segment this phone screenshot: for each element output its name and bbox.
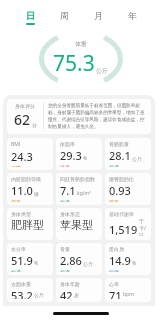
staticText: 基础代谢率 [109, 211, 134, 217]
button[interactable]: 基础代谢率 [105, 208, 151, 240]
staticText: 日 [26, 10, 35, 21]
button[interactable]: 周 [52, 9, 76, 26]
staticText: bpm [123, 291, 134, 298]
staticText: 年 [128, 10, 137, 21]
button[interactable]: 身体类型 [7, 208, 53, 240]
staticText: 分 [32, 122, 37, 128]
staticText: % [132, 260, 137, 267]
staticText: 标准 [109, 164, 119, 167]
staticText: 偏高 [109, 199, 119, 202]
staticText: 42 [60, 288, 73, 299]
button[interactable]: 身体评分 [7, 99, 151, 134]
staticText: 身体形态 [60, 211, 80, 217]
staticText: 29.3 [60, 148, 82, 163]
staticText: 骨骼肌量 [109, 141, 129, 147]
staticText: 28.1 [109, 148, 131, 163]
staticText: 偏低 [109, 269, 119, 272]
staticText: 千卡/日 [139, 218, 147, 236]
staticText: 内脏脂肪等级 [11, 176, 41, 182]
staticText: 周 [60, 10, 69, 21]
button[interactable]: 体脂率 [56, 138, 102, 170]
button[interactable]: 日 [18, 9, 42, 26]
staticText: 蛋白质 [109, 246, 124, 252]
staticText: 骨量 [60, 246, 70, 252]
staticText: 公斤 [34, 292, 44, 298]
staticText: 62 [14, 110, 31, 129]
staticText: 岁 [74, 292, 79, 298]
button[interactable]: 蛋白质 [105, 243, 151, 275]
staticText: 苹果型 [60, 218, 93, 232]
staticText: 7.1 [60, 183, 76, 198]
button[interactable]: 内脏脂肪等级 [7, 173, 53, 205]
staticText: 75.3 [53, 49, 95, 78]
button[interactable]: 去脂体重 [7, 278, 53, 302]
staticText: 偏高 [11, 199, 21, 202]
staticText: 2.86 [60, 253, 82, 268]
staticText: 体脂率 [60, 141, 75, 147]
staticText: 心率 [109, 281, 119, 287]
staticText: 四肢骨骼肌指数 [60, 176, 95, 182]
staticText: 月 [94, 10, 103, 21]
staticText: 水分率 [11, 246, 26, 252]
staticText: 公斤 [83, 261, 93, 267]
staticText: 标准 [60, 269, 70, 272]
staticText: 身体评分 [15, 103, 35, 109]
button[interactable]: 月 [86, 9, 110, 26]
staticText: 腰臀脂肪比 [109, 176, 134, 182]
staticText: 身体类型 [11, 211, 31, 217]
button[interactable]: 四肢骨骼肌指数 [56, 173, 102, 205]
staticText: 身体年龄 [60, 281, 80, 287]
staticText: 超重 [11, 165, 21, 167]
button[interactable]: 身体年龄 [56, 278, 102, 302]
staticText: 公斤 [96, 67, 108, 75]
button[interactable]: 骨量 [56, 243, 102, 275]
staticText: 0.93 [109, 183, 131, 198]
staticText: 公斤 [132, 156, 142, 162]
staticText: 体重 [75, 40, 87, 48]
staticText: 去脂体重 [11, 281, 31, 287]
staticText: 51.9 [11, 253, 33, 268]
staticText: 11.0 [11, 183, 33, 198]
staticText: 24.3 [11, 149, 33, 164]
staticText: % [83, 155, 88, 162]
staticText: 肥胖型 [11, 218, 44, 232]
staticText: 1,519 [109, 222, 138, 237]
button[interactable]: 水分率 [7, 243, 53, 275]
staticText: 71 [109, 288, 122, 299]
staticText: 您的全身骨骼肌量低于标准范围，但脂肪率超标，身材属于脂肪偏高较多的苹果型，增加了… [48, 103, 147, 130]
staticText: 标准 [11, 269, 21, 272]
button[interactable]: 身体形态 [56, 208, 102, 240]
staticText: BMI [11, 141, 21, 148]
staticText: 14.9 [109, 253, 131, 268]
staticText: 过高 [60, 164, 70, 167]
staticText: kg/m² [77, 190, 92, 197]
button[interactable]: 腰臀脂肪比 [105, 173, 151, 205]
button[interactable]: BMI [7, 138, 53, 170]
staticText: 53.2 [11, 288, 33, 299]
button[interactable]: 年 [120, 9, 144, 26]
staticText: 级 [34, 191, 39, 197]
staticText: % [34, 260, 39, 267]
button[interactable]: 心率 [105, 278, 151, 302]
staticText: 标准 [60, 199, 70, 202]
button[interactable]: 骨骼肌量 [105, 138, 151, 170]
